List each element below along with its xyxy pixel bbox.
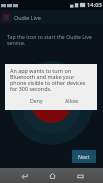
staticText: Oudie Live bbox=[14, 14, 41, 21]
button[interactable]: Start Oudie Live service bbox=[0, 0, 103, 183]
staticText: Next bbox=[78, 153, 90, 160]
button[interactable]: Allow bbox=[60, 96, 84, 105]
button[interactable]: Recents bbox=[66, 168, 94, 183]
button[interactable]: Back bbox=[10, 168, 38, 183]
staticText: 14:03 bbox=[87, 1, 102, 9]
staticText: Deny bbox=[30, 97, 43, 104]
button[interactable]: Home bbox=[38, 168, 66, 183]
staticText: Allow bbox=[65, 97, 79, 104]
button[interactable]: Next bbox=[72, 150, 96, 163]
button[interactable]: Deny bbox=[25, 96, 48, 105]
staticText: An app wants to turn on Bluetooth and ma… bbox=[10, 67, 90, 92]
staticText: Tap the icon to start the Oudie Live ser… bbox=[7, 33, 97, 47]
